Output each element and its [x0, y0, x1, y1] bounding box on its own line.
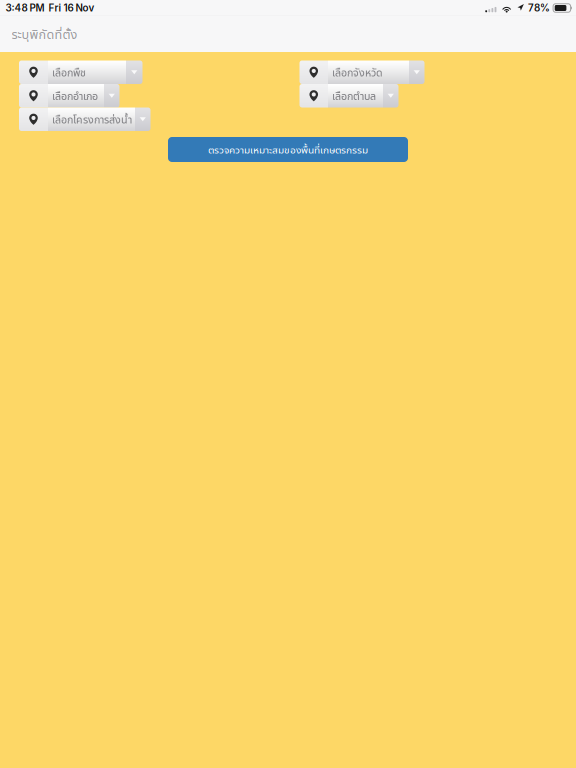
staticText: 3:48 PM [5, 2, 44, 14]
button[interactable]: เลือกจังหวัด [299, 60, 424, 84]
button[interactable]: เลือกพืช [19, 60, 142, 84]
button[interactable]: เลือกโครงการส่งน้ำ [19, 107, 150, 131]
staticText: เลือกโครงการส่งน้ำ [52, 112, 132, 126]
staticText: Fri 16 Nov [48, 2, 94, 14]
staticText: ระบุพิกัดที่ตั้ง [11, 25, 77, 43]
button[interactable]: ตรวจความเหมาะสมของพื้นที่เกษตรกรรม [168, 137, 408, 162]
staticText: เลือกอำเภอ [52, 88, 98, 103]
staticText: ตรวจความเหมาะสมของพื้นที่เกษตรกรรม [208, 143, 368, 156]
staticText: เลือกพืช [52, 65, 86, 79]
staticText: เลือกจังหวัด [332, 65, 383, 79]
button[interactable]: เลือกอำเภอ [19, 84, 119, 107]
staticText: 78% [528, 2, 550, 14]
staticText: เลือกตำบล [332, 88, 376, 103]
button[interactable]: เลือกตำบล [299, 84, 398, 107]
